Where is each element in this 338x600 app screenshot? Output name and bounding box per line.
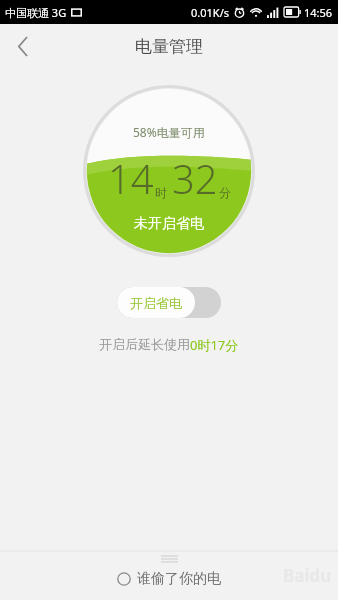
staticText: 电量管理	[135, 36, 203, 57]
staticText: 分	[219, 185, 231, 200]
button[interactable]: 谁偷了你的电	[111, 567, 227, 591]
button[interactable]: Back	[0, 24, 46, 68]
staticText: 14:56	[304, 5, 333, 20]
staticText: 14	[108, 151, 154, 205]
staticText: Baidu	[283, 564, 332, 587]
staticText: 58%电量可用	[133, 124, 205, 140]
staticText: 0.01K/s	[191, 5, 229, 20]
staticText: 时	[155, 185, 167, 200]
staticText: 32	[172, 151, 218, 205]
staticText: 中国联通 3G	[5, 5, 67, 20]
staticText: 开启省电	[130, 295, 182, 311]
staticText: 0时17分	[190, 336, 239, 354]
staticText: 开启后延长使用	[99, 336, 190, 352]
staticText: 未开启省电	[134, 215, 204, 233]
staticText: 谁偷了你的电	[137, 570, 221, 588]
button[interactable]: 开启省电	[117, 287, 221, 318]
